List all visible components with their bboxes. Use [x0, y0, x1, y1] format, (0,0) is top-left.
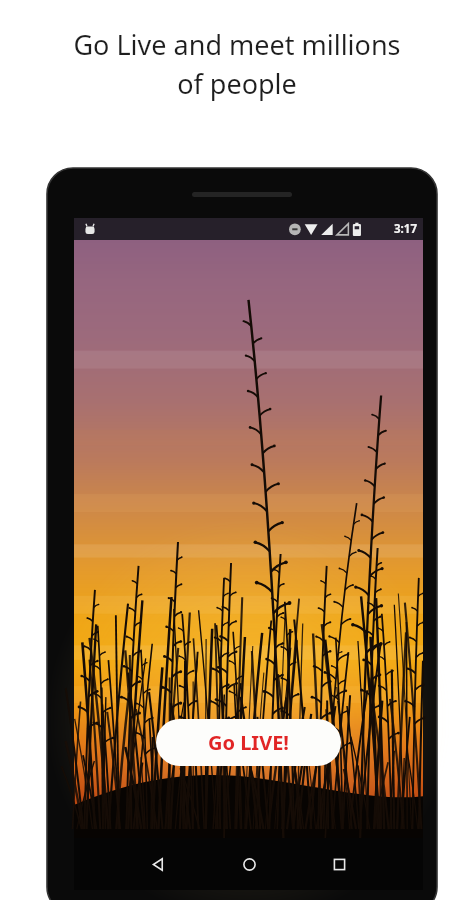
staticText: Go LIVE! — [208, 729, 289, 756]
button[interactable]: Back — [132, 838, 184, 890]
button[interactable]: Recent apps — [313, 838, 365, 890]
staticText: Go Live and meet millions of people — [73, 26, 401, 102]
button[interactable]: Go LIVE! — [156, 719, 341, 766]
button[interactable]: Home — [223, 838, 275, 890]
staticText: 3:17 — [394, 221, 417, 237]
